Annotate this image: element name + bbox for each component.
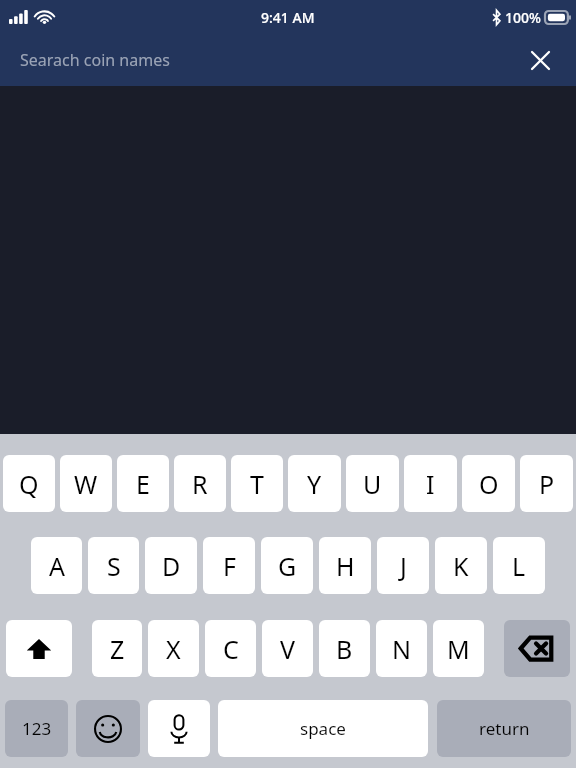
button[interactable]: T: [231, 455, 283, 512]
button[interactable]: J: [377, 537, 429, 594]
staticText: Z: [110, 632, 125, 666]
staticText: return: [479, 717, 530, 740]
button[interactable]: V: [262, 620, 313, 677]
button[interactable]: X: [148, 620, 199, 677]
button[interactable]: F: [203, 537, 255, 594]
staticText: Y: [307, 467, 322, 501]
button[interactable]: P: [520, 455, 573, 512]
staticText: space: [300, 717, 346, 740]
staticText: I: [426, 467, 435, 501]
button[interactable]: 123: [5, 700, 68, 757]
button[interactable]: R: [174, 455, 226, 512]
button[interactable]: Emoji: [76, 700, 140, 757]
staticText: K: [453, 549, 469, 583]
staticText: R: [192, 467, 208, 501]
button[interactable]: A: [31, 537, 82, 594]
button[interactable]: Close search: [520, 40, 560, 80]
button[interactable]: B: [319, 620, 370, 677]
staticText: S: [107, 549, 121, 583]
button[interactable]: space: [218, 700, 428, 757]
staticText: O: [479, 467, 499, 501]
button[interactable]: Y: [288, 455, 341, 512]
button[interactable]: N: [376, 620, 427, 677]
staticText: 100%: [505, 8, 541, 27]
button[interactable]: M: [433, 620, 484, 677]
staticText: V: [280, 632, 296, 666]
staticText: X: [166, 632, 181, 666]
button[interactable]: S: [88, 537, 139, 594]
button[interactable]: I: [404, 455, 457, 512]
button[interactable]: D: [145, 537, 197, 594]
staticText: C: [223, 632, 239, 666]
button[interactable]: Shift: [6, 620, 72, 677]
staticText: F: [223, 549, 236, 583]
button[interactable]: K: [435, 537, 487, 594]
staticText: G: [278, 549, 297, 583]
button[interactable]: Backspace: [504, 620, 570, 677]
staticText: L: [512, 549, 526, 583]
button[interactable]: L: [493, 537, 545, 594]
staticText: 9:41 AM: [261, 8, 315, 27]
staticText: U: [363, 467, 382, 501]
staticText: N: [392, 632, 412, 666]
button[interactable]: Searach coin names: [20, 49, 170, 71]
button[interactable]: W: [60, 455, 112, 512]
staticText: M: [447, 632, 470, 666]
staticText: E: [136, 467, 150, 501]
staticText: W: [74, 467, 98, 501]
button[interactable]: E: [117, 455, 169, 512]
staticText: Searach coin names: [20, 49, 170, 71]
button[interactable]: O: [462, 455, 515, 512]
staticText: Q: [19, 467, 39, 501]
button[interactable]: return: [437, 700, 571, 757]
staticText: 123: [22, 717, 52, 740]
button[interactable]: U: [346, 455, 399, 512]
button[interactable]: C: [205, 620, 256, 677]
staticText: J: [400, 549, 407, 583]
button[interactable]: Z: [92, 620, 142, 677]
staticText: P: [539, 467, 555, 501]
staticText: D: [162, 549, 181, 583]
staticText: B: [336, 632, 353, 666]
staticText: T: [250, 467, 264, 501]
button[interactable]: H: [319, 537, 371, 594]
button[interactable]: G: [261, 537, 313, 594]
button[interactable]: Q: [3, 455, 55, 512]
button[interactable]: Dictation: [148, 700, 210, 757]
staticText: H: [336, 549, 355, 583]
staticText: A: [49, 549, 65, 583]
